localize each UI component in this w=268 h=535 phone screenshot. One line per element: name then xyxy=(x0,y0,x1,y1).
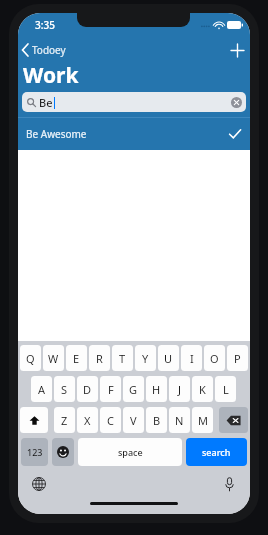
staticText: W xyxy=(48,351,59,366)
staticText: H xyxy=(152,382,161,397)
button[interactable]: Clear text xyxy=(231,97,242,108)
button[interactable]: Todoey xyxy=(18,41,74,59)
staticText: search xyxy=(202,446,231,458)
button[interactable]: P xyxy=(227,345,248,371)
staticText: O xyxy=(210,351,219,366)
button[interactable]: W xyxy=(43,345,64,371)
button[interactable]: L xyxy=(215,376,236,402)
button[interactable]: Add item xyxy=(224,39,250,61)
button[interactable]: F xyxy=(100,376,121,402)
staticText: U xyxy=(164,351,173,366)
button[interactable]: S xyxy=(54,376,75,402)
button[interactable]: U xyxy=(158,345,179,371)
button[interactable]: D xyxy=(77,376,98,402)
staticText: B xyxy=(153,413,161,428)
staticText: T xyxy=(119,351,126,366)
button[interactable]: A xyxy=(31,376,52,402)
button[interactable]: B xyxy=(146,407,167,433)
button[interactable]: G xyxy=(123,376,144,402)
staticText: D xyxy=(83,382,92,397)
button[interactable]: Be xyxy=(22,92,246,112)
staticText: A xyxy=(38,382,46,397)
staticText: R xyxy=(96,351,103,366)
staticText: M xyxy=(198,413,208,428)
button[interactable]: J xyxy=(169,376,190,402)
staticText: V xyxy=(130,413,137,428)
staticText: F xyxy=(108,382,114,397)
staticText: space xyxy=(118,446,143,458)
button[interactable]: Q xyxy=(20,345,41,371)
staticText: E xyxy=(73,351,80,366)
button[interactable]: E xyxy=(66,345,87,371)
staticText: P xyxy=(234,351,241,366)
staticText: Z xyxy=(61,413,68,428)
staticText: I xyxy=(190,351,194,366)
staticText: 123 xyxy=(27,446,43,458)
button[interactable]: Change keyboard xyxy=(28,473,50,495)
button[interactable]: Backspace xyxy=(219,407,248,433)
button[interactable]: Be Awesome xyxy=(18,118,250,150)
staticText: Q xyxy=(26,351,35,366)
button[interactable]: X xyxy=(77,407,98,433)
button[interactable]: 123 xyxy=(21,438,48,466)
button[interactable]: Dictate xyxy=(218,473,240,495)
button[interactable]: search xyxy=(186,438,247,466)
button[interactable]: I xyxy=(181,345,202,371)
button[interactable]: Y xyxy=(135,345,156,371)
staticText: S xyxy=(61,382,68,397)
button[interactable]: M xyxy=(192,407,213,433)
button[interactable]: R xyxy=(89,345,110,371)
button[interactable]: H xyxy=(146,376,167,402)
staticText: X xyxy=(84,413,91,428)
staticText: J xyxy=(178,382,182,397)
button[interactable]: C xyxy=(100,407,121,433)
staticText: Work xyxy=(23,61,79,89)
button[interactable]: space xyxy=(78,438,182,466)
staticText: N xyxy=(175,413,184,428)
staticText: G xyxy=(129,382,138,397)
staticText: C xyxy=(107,413,114,428)
staticText: Be Awesome xyxy=(26,127,87,141)
button[interactable]: N xyxy=(169,407,190,433)
button[interactable]: K xyxy=(192,376,213,402)
staticText: Be xyxy=(39,95,53,110)
button[interactable]: T xyxy=(112,345,133,371)
staticText: 3:35 xyxy=(35,18,55,32)
button[interactable]: O xyxy=(204,345,225,371)
button[interactable]: Shift xyxy=(20,407,48,433)
button[interactable]: Emoji xyxy=(52,438,74,466)
staticText: Y xyxy=(142,351,149,366)
button[interactable]: V xyxy=(123,407,144,433)
button[interactable]: Z xyxy=(54,407,75,433)
staticText: Todoey xyxy=(32,43,66,57)
staticText: L xyxy=(223,382,229,397)
staticText: K xyxy=(199,382,206,397)
